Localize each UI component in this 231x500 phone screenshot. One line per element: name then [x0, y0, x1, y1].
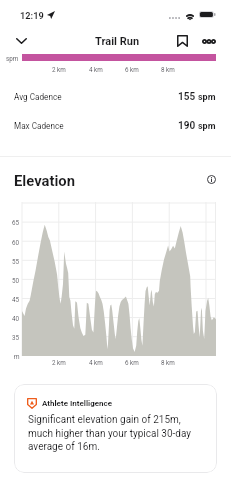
button[interactable]: More options	[197, 29, 221, 53]
button[interactable]: Bookmark	[170, 29, 194, 53]
staticText: 50	[12, 277, 20, 284]
staticText: 6 km	[125, 66, 139, 73]
staticText: spm	[198, 92, 216, 103]
staticText: Elevation	[14, 172, 76, 189]
staticText: 6 km	[125, 359, 139, 366]
staticText: 155	[178, 91, 196, 103]
staticText: 2 km	[52, 359, 66, 366]
button[interactable]: Max Cadence	[0, 113, 231, 139]
button[interactable]: Collapse	[9, 29, 33, 53]
staticText: 4 km	[89, 359, 103, 366]
staticText: 8 km	[161, 359, 175, 366]
staticText: 190	[178, 120, 196, 132]
staticText: spm	[6, 55, 19, 62]
staticText: 60	[12, 239, 20, 246]
button[interactable]: Avg Cadence	[0, 84, 231, 110]
staticText: 45	[12, 296, 20, 303]
staticText: 40	[12, 315, 20, 322]
staticText: Athlete Intelligence	[42, 399, 113, 408]
button[interactable]: Info	[200, 168, 223, 191]
staticText: 65	[12, 219, 20, 226]
staticText: 12:19	[20, 10, 44, 21]
staticText: Avg Cadence	[14, 92, 62, 102]
staticText: Trail Run	[95, 35, 140, 48]
staticText: 35	[12, 334, 20, 341]
staticText: m	[14, 353, 20, 360]
button[interactable]: Athlete Intelligence	[14, 384, 217, 473]
staticText: spm	[198, 121, 216, 132]
staticText: 8 km	[161, 66, 175, 73]
staticText: Max Cadence	[14, 121, 64, 131]
staticText: 2 km	[52, 66, 66, 73]
staticText: 55	[12, 258, 20, 265]
staticText: 4 km	[89, 66, 103, 73]
staticText: Significant elevation gain of 215m, much…	[28, 414, 200, 452]
